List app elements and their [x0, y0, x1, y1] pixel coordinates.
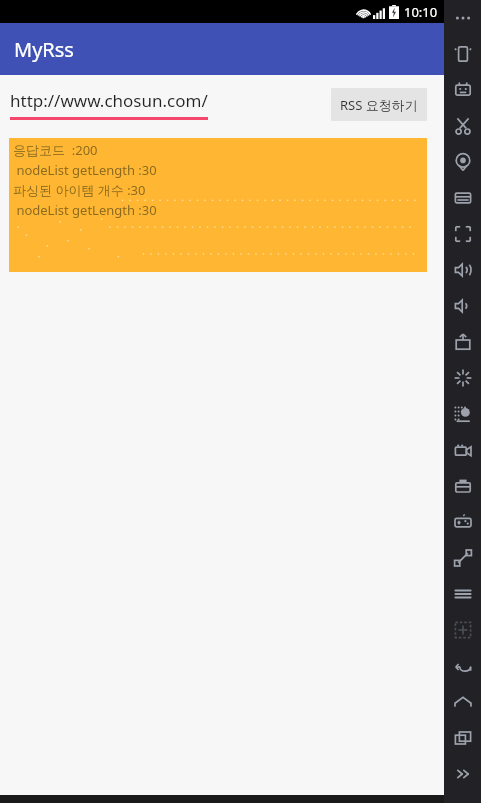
button[interactable]: http://www.chosun.com/s	[10, 89, 208, 120]
button[interactable]: Screenshot	[444, 468, 481, 504]
button[interactable]: Add	[444, 612, 481, 648]
button[interactable]: Menu	[444, 576, 481, 612]
button[interactable]: Location	[444, 144, 481, 180]
button[interactable]: Fullscreen	[444, 216, 481, 252]
button[interactable]: Display	[444, 180, 481, 216]
staticText: nodeList getLength :30	[13, 201, 157, 219]
button[interactable]: Rotate	[444, 36, 481, 72]
staticText: http://www.chosun.com/s	[10, 89, 208, 112]
staticText: 파싱된 아이템 개수 :30	[13, 181, 146, 199]
staticText: MyRss	[14, 36, 74, 63]
button[interactable]: Back	[444, 648, 481, 684]
button[interactable]: Camera	[444, 432, 481, 468]
staticText: 10:10	[404, 3, 438, 21]
staticText: nodeList getLength :30	[13, 161, 157, 179]
button[interactable]: Overview	[444, 720, 481, 756]
button[interactable]: Install APK	[444, 324, 481, 360]
button[interactable]: Home	[444, 684, 481, 720]
button[interactable]: Record	[444, 396, 481, 432]
button[interactable]: Volume down	[444, 288, 481, 324]
button[interactable]: Volume up	[444, 252, 481, 288]
button[interactable]: Snapshot	[444, 360, 481, 396]
button[interactable]: Virtual sensors	[444, 72, 481, 108]
button[interactable]: Game pad	[444, 504, 481, 540]
staticText: 응답코드 :200	[13, 141, 98, 159]
staticText: RSS 요청하기	[340, 96, 418, 114]
button[interactable]: Expand	[444, 756, 481, 792]
button[interactable]: Resize	[444, 540, 481, 576]
button[interactable]: More	[444, 0, 481, 36]
button[interactable]: RSS 요청하기	[331, 88, 427, 121]
button[interactable]: Cut	[444, 108, 481, 144]
